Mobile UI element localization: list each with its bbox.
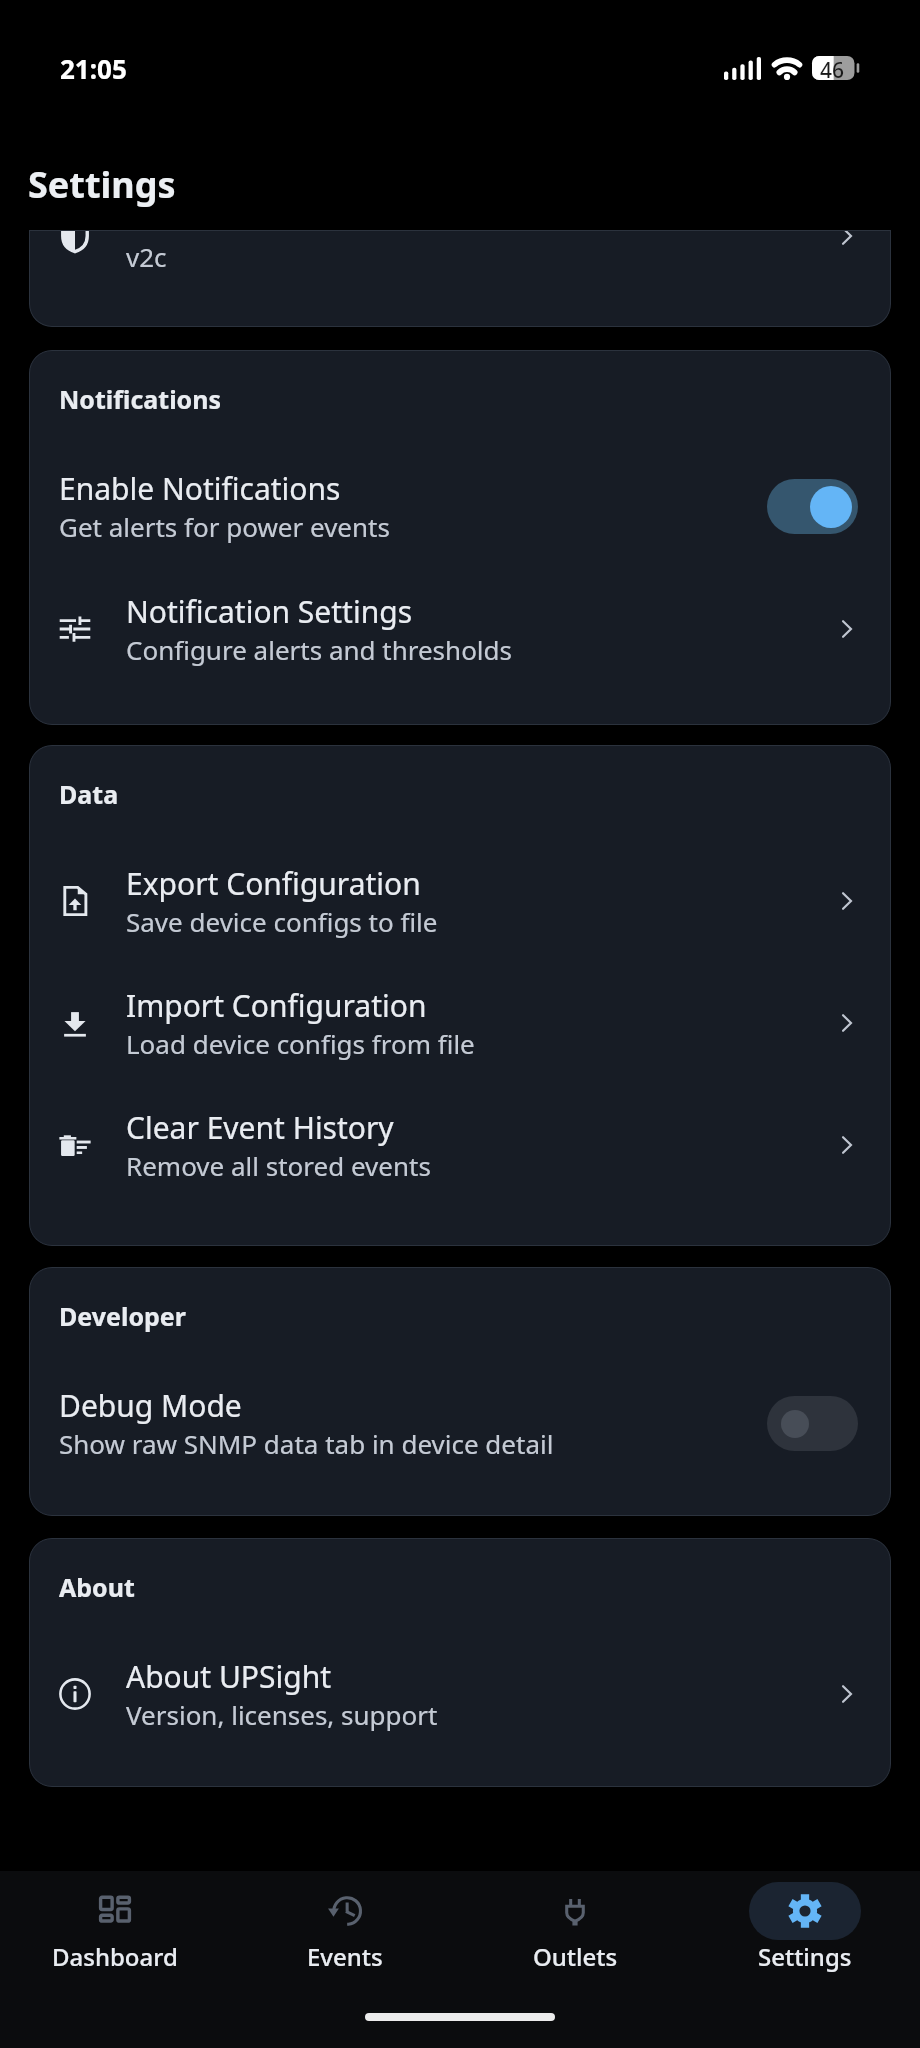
staticText: Notifications	[59, 382, 222, 416]
button[interactable]: Notification Settings	[29, 591, 891, 667]
staticText: 46	[820, 56, 845, 80]
other: Outlets	[519, 1882, 631, 1940]
button[interactable]: Outlets	[460, 1871, 690, 1973]
staticText: Save device configs to file	[126, 904, 438, 939]
staticText: Clear Event History	[126, 1107, 394, 1148]
staticText: About UPSight	[126, 1656, 332, 1697]
staticText: SNMP Version	[126, 230, 324, 239]
staticText: Remove all stored events	[126, 1148, 431, 1183]
staticText: About	[59, 1570, 135, 1604]
staticText: Outlets	[533, 1940, 618, 1973]
button[interactable]: Toggle off	[767, 1396, 858, 1451]
staticText: Dashboard	[52, 1940, 178, 1973]
other: Events	[289, 1882, 401, 1940]
staticText: 21:05	[60, 51, 127, 86]
staticText: v2c	[126, 239, 167, 274]
button[interactable]: Import Configuration	[29, 985, 891, 1061]
button[interactable]: Toggle on	[767, 479, 858, 534]
staticText: Show raw SNMP data tab in device detail	[59, 1426, 554, 1461]
staticText: Developer	[59, 1299, 186, 1333]
button[interactable]: Events	[230, 1871, 460, 1973]
staticText: Settings	[758, 1940, 852, 1973]
staticText: Import Configuration	[126, 985, 427, 1026]
button[interactable]: Debug Mode	[29, 1385, 891, 1461]
staticText: Version, licenses, support	[126, 1697, 438, 1732]
staticText: Configure alerts and thresholds	[126, 632, 513, 667]
button[interactable]: Clear Event History	[29, 1107, 891, 1183]
other: Settings	[749, 1882, 861, 1940]
staticText: Settings	[28, 160, 176, 209]
button[interactable]: Settings	[690, 1871, 920, 1973]
staticText: Get alerts for power events	[59, 509, 390, 544]
other: Dashboard	[59, 1882, 171, 1940]
staticText: Events	[307, 1940, 383, 1973]
button[interactable]: About UPSight	[29, 1656, 891, 1732]
button[interactable]: Export Configuration	[29, 863, 891, 939]
staticText: Notification Settings	[126, 591, 413, 632]
button[interactable]: Dashboard	[0, 1871, 230, 1973]
button[interactable]: SNMP Version	[29, 230, 891, 327]
staticText: Debug Mode	[59, 1385, 242, 1426]
staticText: Export Configuration	[126, 863, 421, 904]
staticText: Enable Notifications	[59, 468, 341, 509]
button[interactable]: Enable Notifications	[29, 468, 891, 544]
staticText: Load device configs from file	[126, 1026, 475, 1061]
staticText: Data	[59, 777, 119, 811]
